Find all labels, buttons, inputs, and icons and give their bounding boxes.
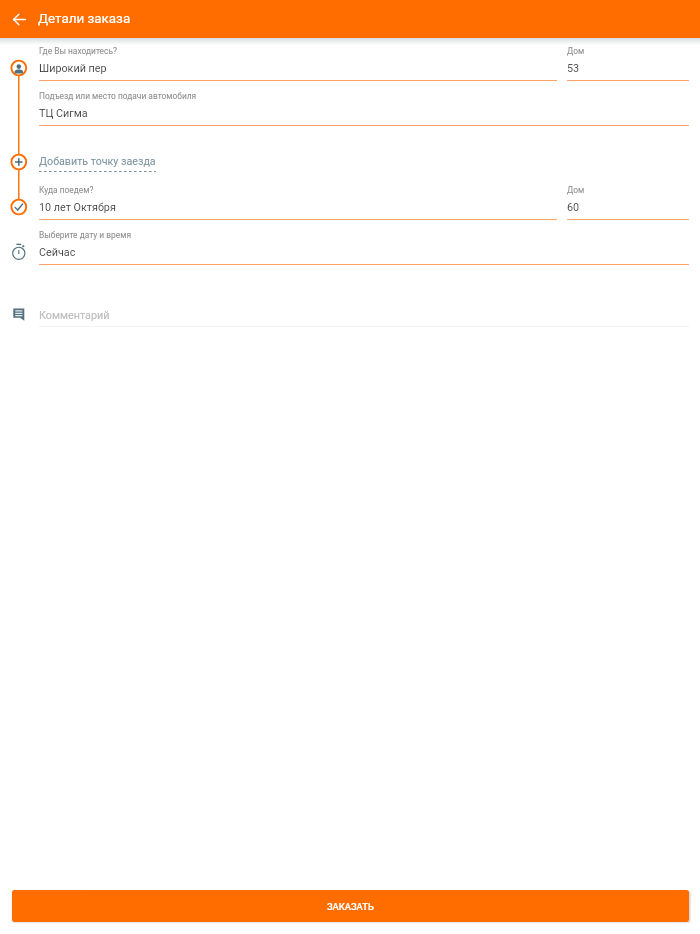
- staticText: Сейчас: [39, 246, 76, 259]
- staticText: Добавить точку заезда: [39, 155, 156, 168]
- staticText: Широкий пер: [39, 62, 107, 75]
- staticText: ТЦ Сигма: [39, 107, 88, 120]
- staticText: Куда поедем?: [39, 185, 94, 195]
- button[interactable]: Back: [6, 6, 33, 33]
- staticText: Подъезд или место подачи автомобиля: [39, 91, 197, 101]
- button[interactable]: ЗАКАЗАТЬ: [12, 890, 689, 922]
- button[interactable]: [39, 185, 557, 220]
- button[interactable]: Добавить точку заезда: [39, 155, 156, 172]
- staticText: 60: [567, 201, 580, 214]
- button[interactable]: [567, 185, 689, 220]
- button[interactable]: [39, 306, 689, 328]
- button[interactable]: [567, 46, 689, 81]
- staticText: Детали заказа: [38, 11, 131, 27]
- staticText: Комментарий: [39, 309, 110, 322]
- staticText: Выберите дату и время: [39, 230, 132, 240]
- staticText: 10 лет Октября: [39, 201, 116, 214]
- button[interactable]: [39, 46, 557, 81]
- staticText: Дом: [567, 185, 585, 195]
- staticText: Дом: [567, 46, 585, 56]
- button[interactable]: [39, 230, 689, 265]
- button[interactable]: [39, 91, 689, 126]
- staticText: ЗАКАЗАТЬ: [327, 901, 374, 912]
- staticText: 53: [567, 62, 580, 75]
- staticText: Где Вы находитесь?: [39, 46, 117, 56]
